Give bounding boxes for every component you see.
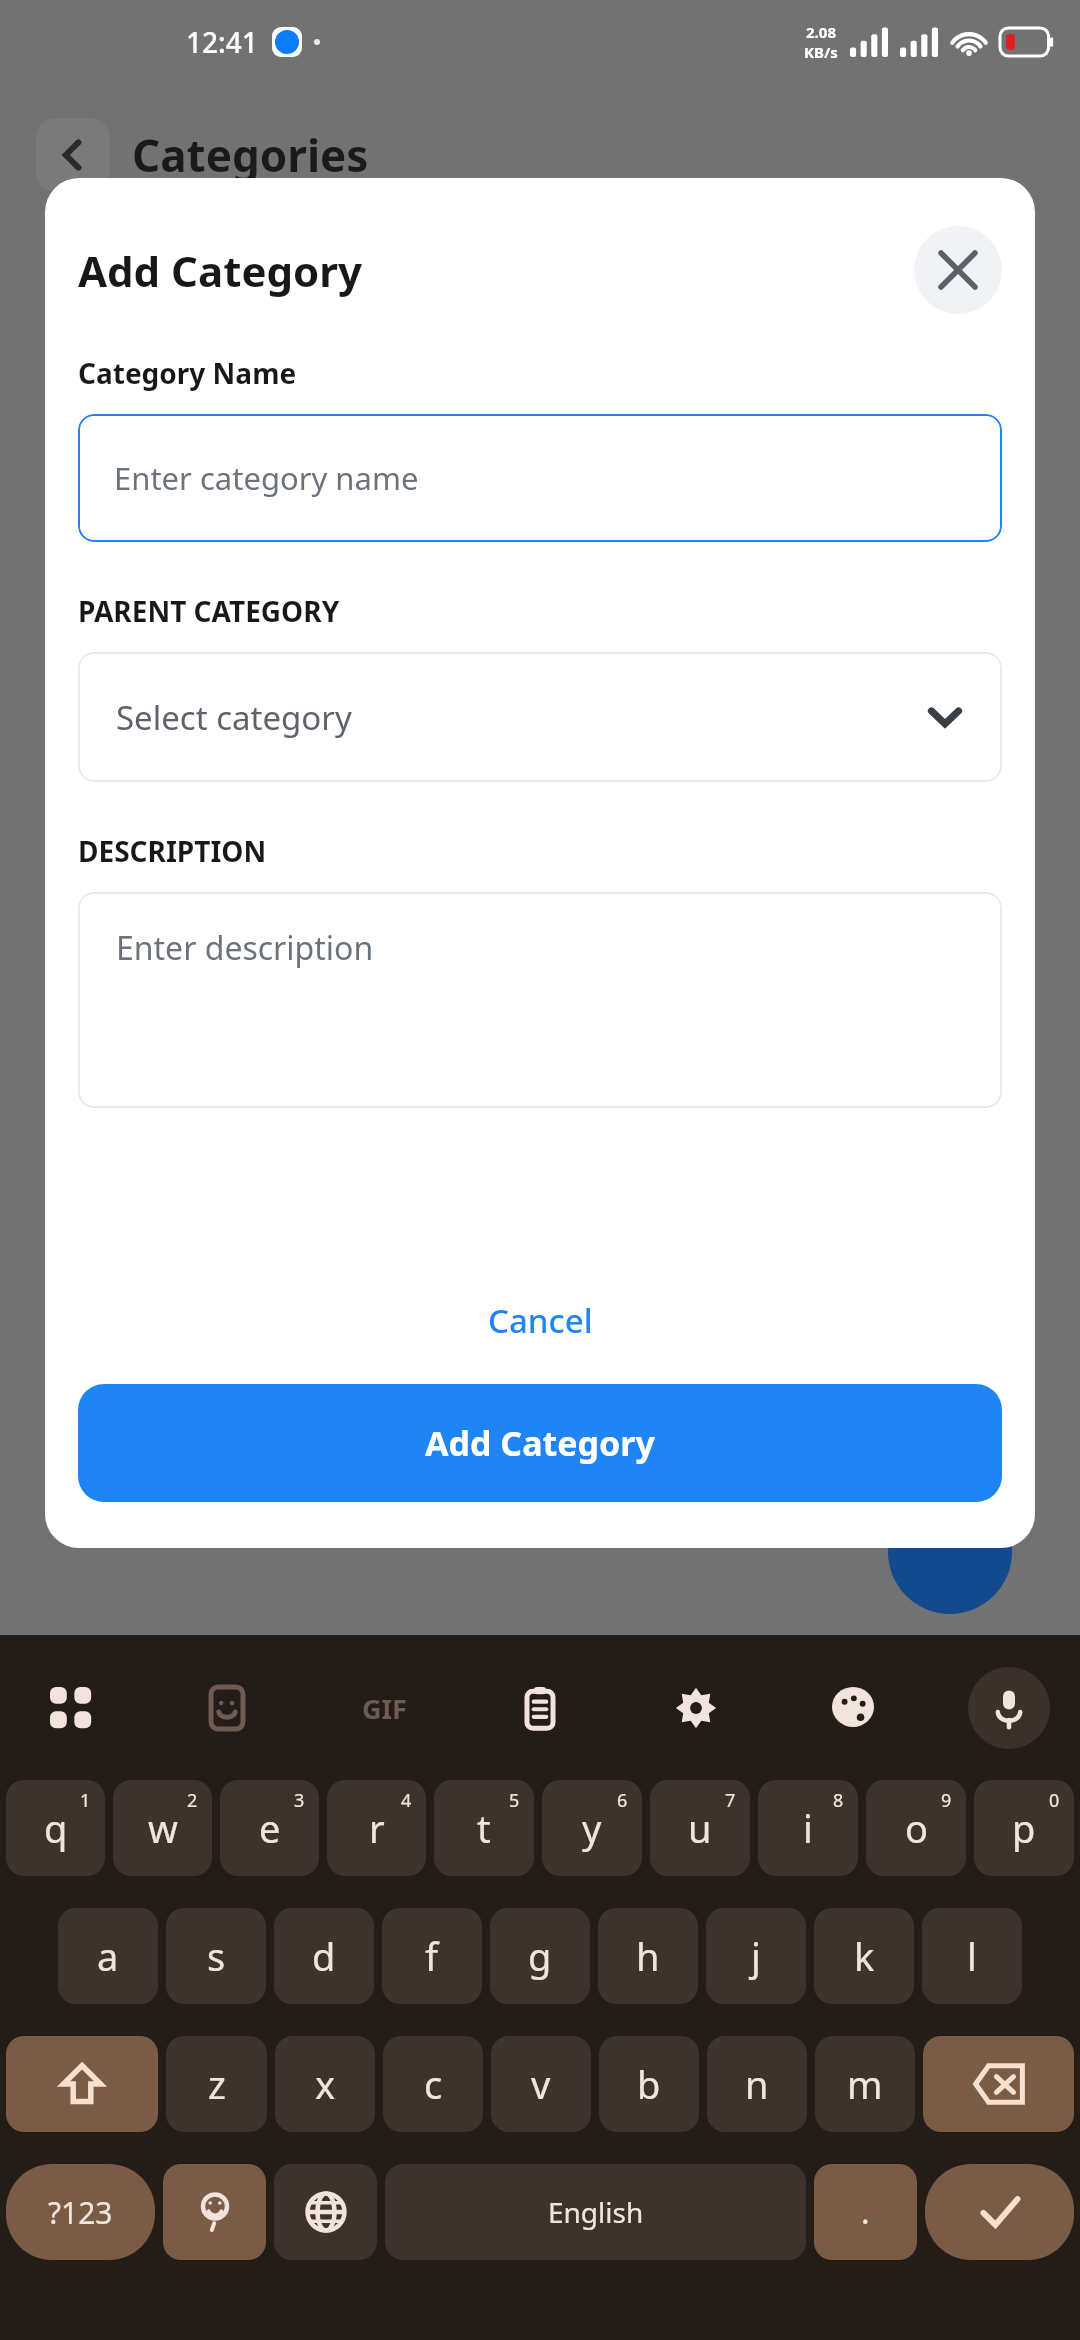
button[interactable]: v <box>491 2036 591 2132</box>
staticText: Category Name <box>78 354 297 392</box>
button[interactable]: u <box>650 1780 750 1876</box>
staticText: j <box>751 1930 761 1982</box>
staticText: p <box>1012 1802 1036 1854</box>
staticText: r <box>369 1802 385 1854</box>
button[interactable]: p <box>974 1780 1074 1876</box>
staticText: e <box>259 1802 281 1854</box>
button[interactable]: Back <box>36 118 110 192</box>
button[interactable]: m <box>815 2036 915 2132</box>
staticText: 9 <box>941 1788 952 1813</box>
button[interactable]: Settings <box>655 1667 737 1749</box>
button[interactable]: Themes <box>812 1667 894 1749</box>
staticText: Cancel <box>488 1298 593 1343</box>
button[interactable]: . <box>814 2164 917 2260</box>
button[interactable]: Clipboard <box>499 1667 581 1749</box>
button[interactable]: b <box>599 2036 699 2132</box>
button[interactable]: k <box>814 1908 914 2004</box>
staticText: Categories <box>132 125 369 185</box>
staticText: v <box>531 2058 551 2110</box>
staticText: GIF <box>362 1690 407 1727</box>
button[interactable]: j <box>706 1908 806 2004</box>
staticText: u <box>688 1802 712 1854</box>
staticText: 4 <box>401 1788 412 1813</box>
button[interactable]: e <box>220 1780 319 1876</box>
staticText: Enter category name <box>114 457 419 499</box>
staticText: w <box>148 1802 178 1854</box>
staticText: q <box>44 1802 68 1854</box>
staticText: l <box>967 1930 977 1982</box>
button[interactable]: i <box>758 1780 858 1876</box>
staticText: 1 <box>80 1788 91 1813</box>
button[interactable]: Emoji <box>163 2164 266 2260</box>
staticText: s <box>207 1930 226 1982</box>
staticText: 6 <box>617 1788 628 1813</box>
button[interactable]: l <box>922 1908 1022 2004</box>
staticText: 7 <box>725 1788 736 1813</box>
button[interactable]: English <box>385 2164 806 2260</box>
button[interactable]: r <box>327 1780 426 1876</box>
staticText: Enter description <box>116 926 374 970</box>
staticText: t <box>477 1802 491 1854</box>
staticText: i <box>803 1802 813 1854</box>
staticText: m <box>847 2058 883 2110</box>
button[interactable]: ?123 <box>6 2164 155 2260</box>
staticText: English <box>548 2193 644 2231</box>
staticText: Add Category <box>425 1420 655 1466</box>
staticText: g <box>528 1930 552 1982</box>
button[interactable]: f <box>382 1908 482 2004</box>
button[interactable]: GIF <box>343 1667 425 1749</box>
staticText: DESCRIPTION <box>78 832 267 870</box>
button[interactable]: z <box>166 2036 267 2132</box>
button[interactable]: n <box>707 2036 807 2132</box>
button[interactable]: Backspace <box>923 2036 1074 2132</box>
staticText: k <box>854 1930 875 1982</box>
staticText: 5 <box>509 1788 520 1813</box>
button[interactable]: w <box>113 1780 212 1876</box>
button[interactable]: Stickers <box>186 1667 268 1749</box>
button[interactable]: Enter <box>925 2164 1074 2260</box>
button[interactable]: Add <box>888 1490 1012 1614</box>
staticText: a <box>97 1930 119 1982</box>
staticText: 12:41 <box>186 23 258 61</box>
staticText: . <box>861 2190 870 2234</box>
button[interactable]: q <box>6 1780 105 1876</box>
staticText: KB/s <box>804 42 838 62</box>
button[interactable]: y <box>542 1780 642 1876</box>
staticText: x <box>315 2058 336 2110</box>
staticText: y <box>582 1802 602 1854</box>
staticText: d <box>312 1930 336 1982</box>
staticText: 2.08 <box>806 22 836 42</box>
button[interactable]: Add Category <box>78 1384 1002 1502</box>
button[interactable]: Select category <box>78 652 1002 782</box>
button[interactable]: Voice input <box>968 1667 1050 1749</box>
button[interactable]: h <box>598 1908 698 2004</box>
button[interactable]: Enter description <box>78 892 1002 1108</box>
staticText: 2 <box>187 1788 198 1813</box>
button[interactable]: a <box>58 1908 158 2004</box>
staticText: z <box>208 2058 226 2110</box>
button[interactable]: Close <box>914 226 1002 314</box>
button[interactable]: Shift <box>6 2036 158 2132</box>
staticText: 3 <box>294 1788 305 1813</box>
staticText: 0 <box>1049 1788 1060 1813</box>
button[interactable]: Enter category name <box>78 414 1002 542</box>
button[interactable]: s <box>166 1908 266 2004</box>
staticText: o <box>905 1802 928 1854</box>
button[interactable]: Apps <box>30 1667 112 1749</box>
button[interactable]: c <box>383 2036 483 2132</box>
staticText: f <box>425 1930 439 1982</box>
button[interactable]: d <box>274 1908 374 2004</box>
staticText: ?123 <box>48 2192 113 2233</box>
staticText: 8 <box>833 1788 844 1813</box>
button[interactable]: Change language <box>274 2164 377 2260</box>
button[interactable]: t <box>434 1780 534 1876</box>
button[interactable]: g <box>490 1908 590 2004</box>
staticText: b <box>637 2058 661 2110</box>
staticText: Select category <box>116 695 352 740</box>
staticText: n <box>745 2058 769 2110</box>
button[interactable]: x <box>275 2036 375 2132</box>
button[interactable]: Cancel <box>78 1278 1002 1362</box>
staticText: h <box>636 1930 660 1982</box>
button[interactable]: o <box>866 1780 966 1876</box>
staticText: c <box>424 2058 443 2110</box>
